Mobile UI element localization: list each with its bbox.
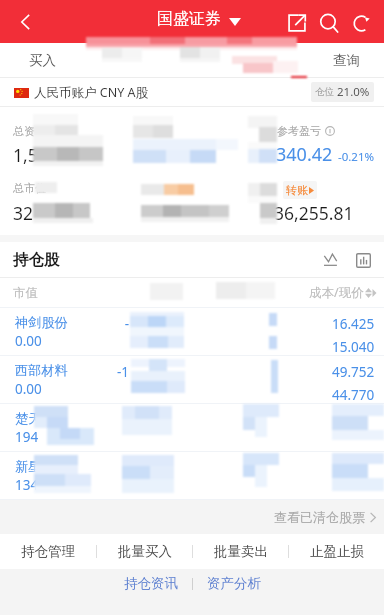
button[interactable] bbox=[232, 43, 308, 77]
staticText: 44.770 bbox=[332, 386, 375, 404]
staticText: 新星 bbox=[15, 458, 42, 475]
button[interactable]: 资产分析 bbox=[207, 575, 261, 592]
staticText: 查看已清仓股票 bbox=[274, 509, 365, 525]
button[interactable]: 止盈止损 bbox=[289, 534, 384, 569]
staticText: 持仓资讯 bbox=[124, 575, 178, 592]
staticText: 买入 bbox=[29, 52, 56, 69]
staticText: 总市值 bbox=[13, 181, 46, 195]
button[interactable]: 买入 bbox=[4, 43, 80, 77]
staticText: - bbox=[100, 315, 129, 333]
staticText: 32 bbox=[13, 201, 34, 225]
staticText: 194 bbox=[15, 428, 39, 446]
staticText: 15.040 bbox=[332, 338, 375, 356]
staticText: 36,255.81 bbox=[274, 201, 354, 225]
button[interactable]: 查看已清仓股票 bbox=[274, 509, 376, 525]
staticText: 仓位 bbox=[315, 86, 334, 98]
button[interactable]: Refresh bbox=[345, 7, 377, 39]
button[interactable]: Open in new window bbox=[281, 7, 313, 39]
staticText: 神剑股份 bbox=[15, 314, 68, 331]
button[interactable]: 成本/现价 bbox=[309, 284, 377, 301]
button[interactable]: 新星 bbox=[0, 452, 384, 499]
button[interactable] bbox=[80, 43, 156, 77]
staticText: 转账 bbox=[286, 183, 308, 197]
staticText: 持仓股 bbox=[13, 250, 60, 270]
button[interactable]: 批量卖出 bbox=[193, 534, 288, 569]
button[interactable]: 国盛证券 bbox=[157, 9, 241, 29]
staticText: 0.00 bbox=[15, 332, 42, 350]
staticText: 人民币账户 CNY A股 bbox=[34, 84, 148, 101]
staticText: 国盛证券 bbox=[157, 9, 221, 29]
button[interactable]: 持仓资讯 bbox=[124, 575, 178, 592]
staticText: 134 bbox=[15, 476, 39, 494]
staticText: 止盈止损 bbox=[310, 543, 364, 560]
staticText: -0.21% bbox=[338, 149, 375, 165]
staticText: 资产分析 bbox=[207, 575, 261, 592]
staticText: 总资产 bbox=[13, 124, 46, 138]
staticText: 西部材料 bbox=[15, 362, 68, 379]
staticText: 查询 bbox=[333, 52, 360, 69]
button[interactable]: 查询 bbox=[308, 43, 384, 77]
button[interactable]: 持仓管理 bbox=[0, 534, 96, 569]
button[interactable]: Trend chart bbox=[316, 245, 346, 275]
staticText: 0.00 bbox=[15, 380, 42, 398]
button[interactable]: Back bbox=[9, 6, 41, 38]
staticText: 340.42 bbox=[276, 142, 333, 167]
button[interactable]: Search bbox=[313, 7, 345, 39]
button[interactable]: 神剑股份 bbox=[0, 308, 384, 355]
staticText: 21.0% bbox=[337, 84, 370, 100]
button[interactable]: 楚天 bbox=[0, 404, 384, 451]
staticText: 市值 bbox=[13, 285, 38, 301]
staticText: 楚天 bbox=[15, 410, 42, 427]
staticText: 批量买入 bbox=[118, 543, 172, 560]
staticText: 参考盈亏 bbox=[277, 124, 321, 138]
button[interactable]: 转账 bbox=[283, 181, 317, 199]
staticText: -1 bbox=[100, 363, 129, 381]
button[interactable] bbox=[156, 43, 232, 77]
staticText: 批量卖出 bbox=[214, 543, 268, 560]
button[interactable]: 批量买入 bbox=[97, 534, 192, 569]
button[interactable]: 西部材料 bbox=[0, 356, 384, 403]
staticText: 成本/现价 bbox=[309, 284, 364, 301]
staticText: 持仓管理 bbox=[21, 543, 75, 560]
staticText: 49.752 bbox=[332, 363, 375, 381]
button[interactable]: Bar chart bbox=[348, 245, 378, 275]
staticText: 16.425 bbox=[332, 315, 375, 333]
staticText: 1,5 bbox=[13, 143, 38, 167]
